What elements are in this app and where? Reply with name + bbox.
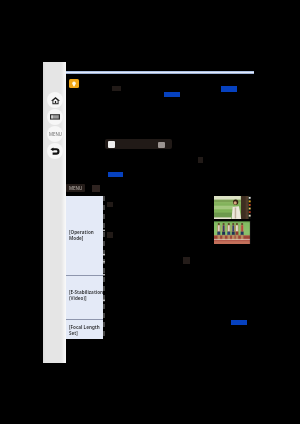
staticText: [Focal Length Set] <box>69 324 100 336</box>
staticText: [E-Stabilization (Video)] <box>69 289 104 301</box>
staticText: MENU <box>49 131 62 137</box>
button[interactable]: Home <box>47 92 63 108</box>
button[interactable]: Back <box>47 143 63 159</box>
button[interactable]: Contents <box>47 109 63 125</box>
staticText: [Operation Mode] <box>69 229 94 241</box>
button[interactable]: Menu <box>47 126 63 142</box>
staticText: MENU <box>69 185 83 191</box>
